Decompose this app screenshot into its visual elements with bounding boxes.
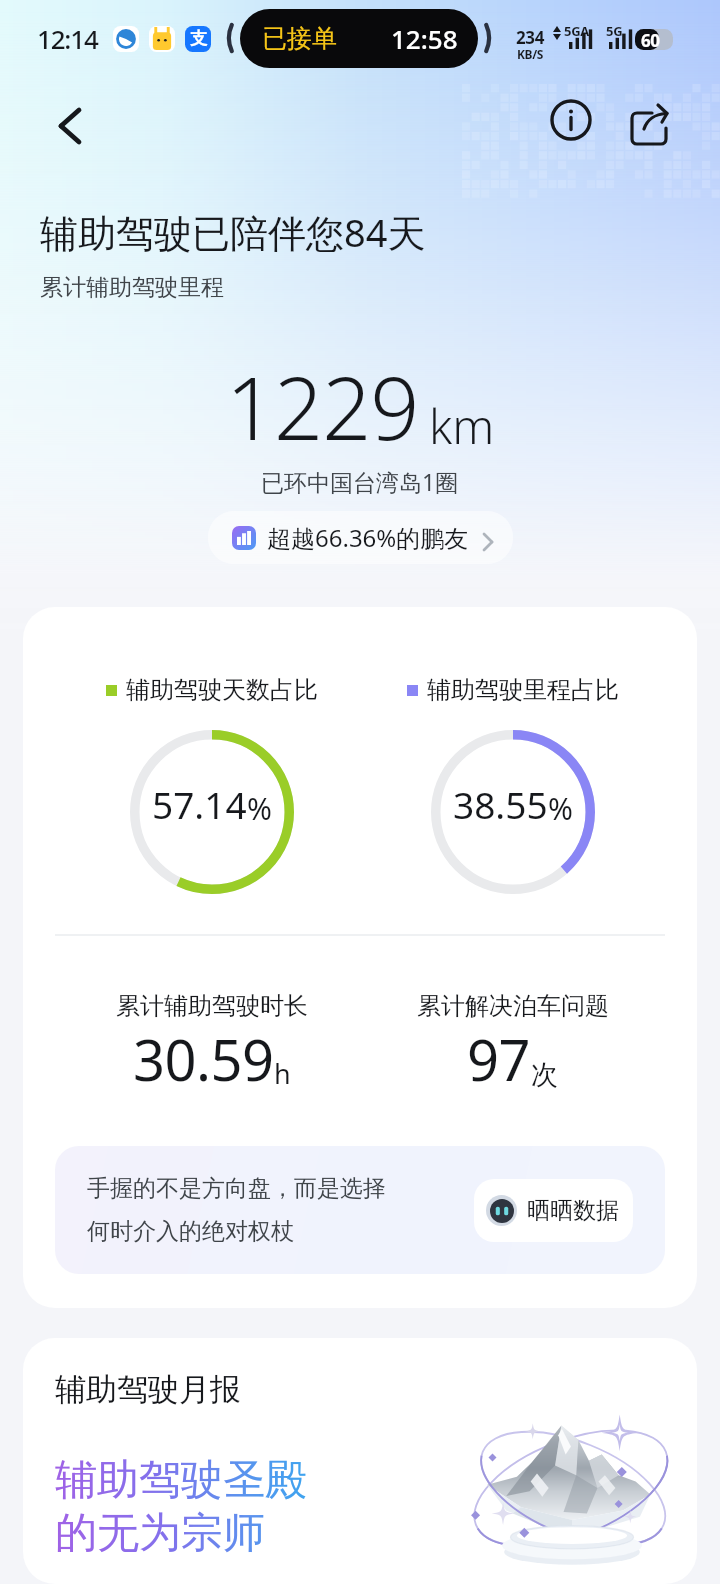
staticText: 何时介入的绝对权杖 <box>87 1217 294 1246</box>
staticText: h <box>274 1055 291 1092</box>
staticText: 累计辅助驾驶时长 <box>116 991 308 1021</box>
staticText: 97 <box>467 1021 531 1097</box>
staticText: 12:14 <box>37 21 98 56</box>
staticText: 30.59 <box>133 1021 274 1097</box>
staticText: 已环中国台湾岛1圈 <box>261 466 459 497</box>
staticText: 1229 <box>226 348 419 465</box>
button[interactable]: 超越66.36%的鹏友 <box>208 511 513 564</box>
staticText: 57.14 <box>152 779 247 829</box>
staticText: 234 <box>516 26 544 49</box>
button[interactable]: 晒晒数据 <box>474 1179 633 1242</box>
staticText: 38.55 <box>453 779 548 829</box>
staticText: 5G <box>606 22 623 40</box>
staticText: 辅助驾驶月报 <box>55 1370 241 1409</box>
button[interactable]: Info <box>547 96 595 144</box>
staticText: 的无为宗师 <box>55 1507 323 1560</box>
staticText: 5GA <box>564 22 589 40</box>
staticText: 辅助驾驶天数占比 <box>126 675 318 705</box>
staticText: 支 <box>190 28 207 49</box>
staticText: 累计辅助驾驶里程 <box>40 273 224 302</box>
staticText: 辅助驾驶圣殿 <box>55 1454 323 1507</box>
staticText: KB/S <box>517 46 543 62</box>
staticText: 已接单 <box>262 23 337 54</box>
staticText: 60 <box>641 29 660 52</box>
staticText: 辅助驾驶已陪伴您84天 <box>40 206 426 258</box>
staticText: 辅助驾驶里程占比 <box>427 675 619 705</box>
button[interactable]: Back <box>38 90 90 142</box>
button[interactable]: Share <box>626 92 674 140</box>
staticText: 12:58 <box>391 21 458 56</box>
staticText: 累计解决泊车问题 <box>417 991 609 1021</box>
staticText: 超越66.36%的鹏友 <box>267 521 469 554</box>
staticText: 晒晒数据 <box>527 1196 619 1225</box>
staticText: km <box>429 394 495 458</box>
staticText: 次 <box>531 1058 558 1092</box>
staticText: % <box>247 788 272 829</box>
staticText: 手握的不是方向盘，而是选择 <box>87 1174 386 1203</box>
staticText: % <box>548 788 573 829</box>
